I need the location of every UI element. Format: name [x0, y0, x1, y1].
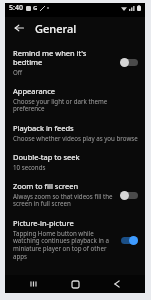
staticText: G	[33, 4, 38, 12]
staticText: Playback in feeds	[13, 123, 74, 133]
button[interactable]: Double-tap to seek	[5, 147, 145, 176]
button[interactable]: Recent apps	[21, 275, 47, 293]
button[interactable]: Back	[10, 19, 28, 37]
button[interactable]: Toggle off	[119, 56, 139, 68]
staticText: Tapping Home button while watching conti…	[13, 229, 114, 261]
button[interactable]: Zoom to fill screen	[5, 176, 145, 213]
staticText: Double-tap to seek	[13, 152, 80, 162]
button[interactable]: Home	[62, 275, 88, 293]
staticText: 10 seconds	[13, 163, 46, 171]
button[interactable]: Back	[104, 275, 130, 293]
button[interactable]: Playback in feeds	[5, 118, 145, 147]
button[interactable]: Toggle off	[119, 189, 139, 201]
staticText: Appearance	[13, 86, 56, 96]
staticText: Off	[13, 68, 23, 76]
button[interactable]: Appearance	[5, 81, 145, 118]
staticText: General	[35, 21, 77, 36]
button[interactable]: Picture-in-picture	[5, 213, 145, 266]
staticText: Always zoom so that videos fill the scre…	[13, 192, 114, 208]
button[interactable]: Toggle on	[119, 234, 139, 246]
staticText: Zoom to fill screen	[13, 181, 79, 191]
staticText: Choose whether videos play as you browse	[13, 134, 138, 142]
staticText: Picture-in-picture	[13, 218, 74, 228]
staticText: 5:40	[9, 3, 23, 13]
staticText: Choose your light or dark theme preferen…	[13, 97, 139, 113]
staticText: Remind me when it's bedtime	[13, 48, 114, 67]
button[interactable]: Remind me when it's bedtime	[5, 43, 145, 81]
